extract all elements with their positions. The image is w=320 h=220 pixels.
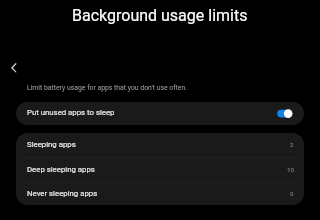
- button[interactable]: Deep sleeping apps: [16, 158, 304, 182]
- staticText: 0: [290, 190, 294, 197]
- staticText: Deep sleeping apps: [27, 165, 95, 174]
- staticText: Never sleeping apps: [27, 189, 98, 198]
- staticText: 2: [290, 141, 294, 148]
- staticText: Limit battery usage for apps that you do…: [27, 84, 187, 92]
- button[interactable]: Put unused apps to sleep: [277, 109, 293, 119]
- button[interactable]: Put unused apps to sleep: [16, 102, 304, 125]
- staticText: Sleeping apps: [27, 140, 76, 149]
- staticText: Put unused apps to sleep: [27, 108, 115, 117]
- button[interactable]: Never sleeping apps: [16, 183, 304, 205]
- staticText: Background usage limits: [72, 6, 248, 25]
- button[interactable]: Sleeping apps: [16, 133, 304, 157]
- staticText: 10: [287, 166, 294, 173]
- button[interactable]: Navigate up: [2, 54, 30, 82]
